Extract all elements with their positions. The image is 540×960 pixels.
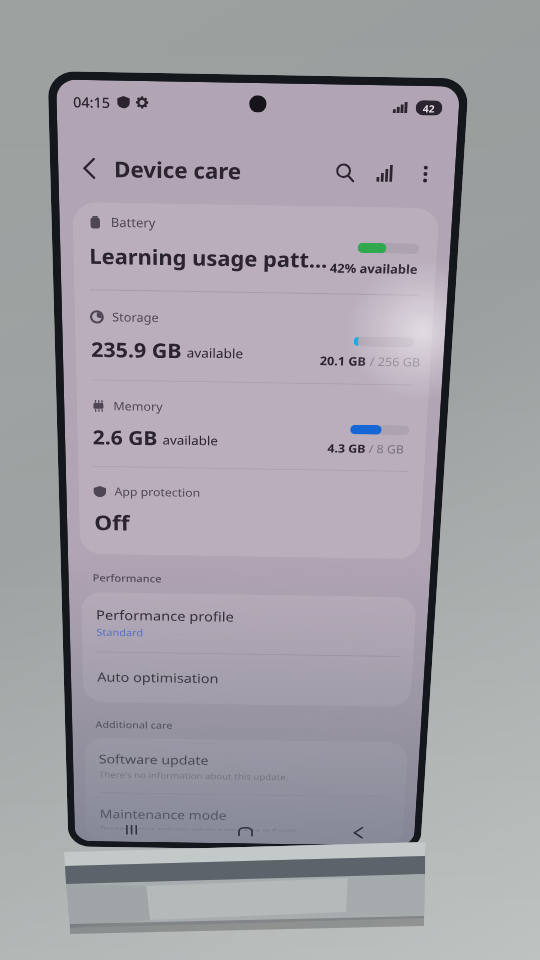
button[interactable]: Recents — [74, 816, 189, 842]
staticText: Battery — [111, 213, 156, 231]
staticText: 42% available — [330, 259, 419, 278]
button[interactable]: Battery — [72, 202, 440, 295]
button[interactable]: Memory — [76, 380, 429, 471]
button[interactable]: More options — [407, 156, 444, 191]
button[interactable]: Back — [301, 819, 415, 846]
staticText: available — [162, 431, 219, 449]
button[interactable]: Storage — [74, 290, 434, 385]
staticText: 4.3 GB — [327, 440, 366, 456]
staticText: Protect your privacy while someone is fi… — [100, 823, 297, 832]
staticText: / 8 GB — [365, 441, 405, 457]
staticText: Storage — [112, 308, 159, 326]
staticText: 04:15 — [73, 92, 110, 112]
staticText: Memory — [113, 398, 163, 414]
staticText: 2.6 GB — [92, 423, 158, 450]
staticText: 20.1 GB — [320, 352, 367, 369]
staticText: Additional care — [95, 718, 173, 731]
staticText: Off — [94, 508, 130, 536]
button[interactable]: Usage statistics — [367, 156, 403, 190]
button[interactable]: App protection — [78, 467, 424, 559]
button[interactable]: Auto optimisation — [82, 652, 413, 707]
staticText: Performance — [92, 571, 162, 585]
staticText: / 256 GB — [366, 353, 421, 370]
staticText: Device care — [114, 153, 242, 185]
staticText: Software update — [99, 750, 209, 769]
button[interactable]: Home — [189, 818, 302, 844]
staticText: 235.9 GB — [91, 335, 182, 364]
staticText: Auto optimisation — [97, 668, 219, 687]
staticText: available — [187, 344, 244, 362]
staticText: 42 — [422, 101, 436, 116]
staticText: Performance profile — [96, 606, 234, 626]
button[interactable]: Back — [70, 150, 107, 186]
staticText: Standard — [96, 625, 144, 639]
button[interactable]: Maintenance mode — [85, 793, 405, 846]
staticText: Maintenance mode — [100, 806, 227, 823]
button[interactable]: Software update — [84, 737, 408, 797]
staticText: Learning usage patt... — [89, 241, 329, 273]
staticText: App protection — [114, 483, 200, 500]
button[interactable]: Search — [327, 155, 362, 189]
button[interactable]: Performance profile — [81, 592, 417, 656]
staticText: There's no information about this update… — [99, 768, 288, 782]
